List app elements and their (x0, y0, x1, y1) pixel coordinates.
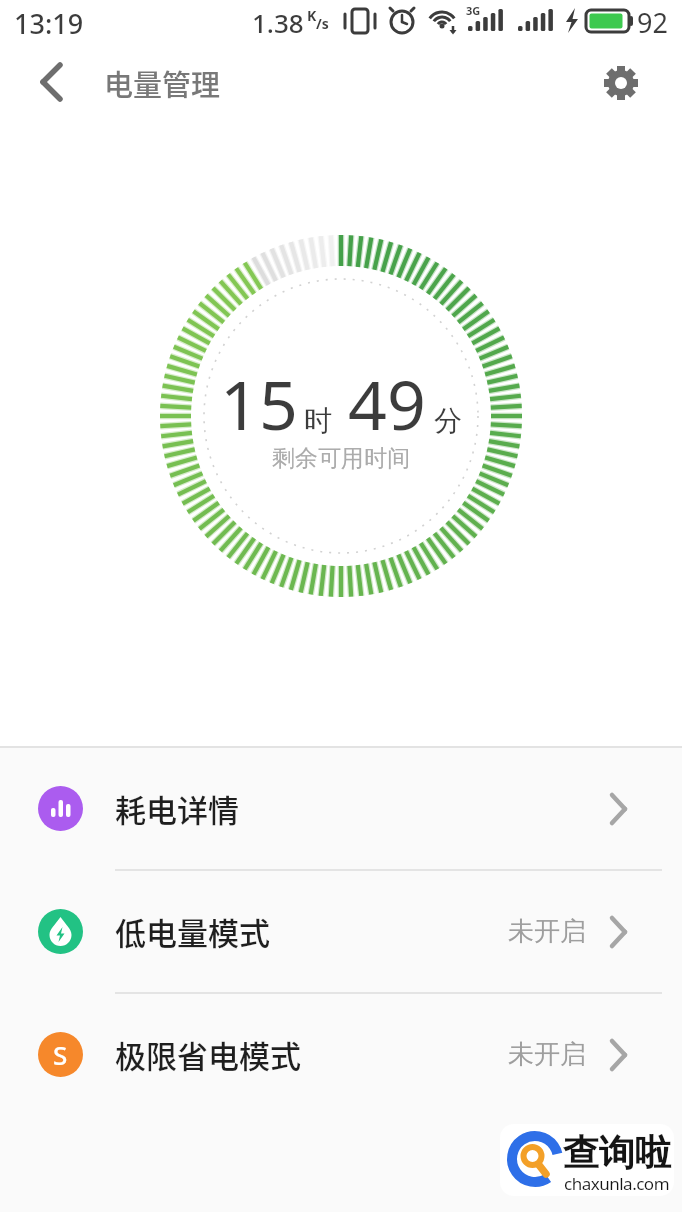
staticText: 电量管理 (104, 62, 221, 104)
staticText: 49 (348, 357, 426, 450)
button[interactable] (593, 55, 649, 111)
staticText: 未开启 (508, 1038, 586, 1071)
staticText: 未开启 (508, 915, 586, 948)
button[interactable]: 查询啦 (500, 1124, 674, 1196)
staticText: 1.38 (252, 5, 304, 40)
staticText: 剩余可用时间 (0, 444, 682, 473)
staticText: 低电量模式 (115, 909, 270, 954)
staticText: 极限省电模式 (115, 1032, 301, 1077)
staticText: S (53, 1037, 68, 1072)
button[interactable]: S (0, 994, 682, 1115)
staticText: 时 (304, 403, 332, 438)
staticText: /s (316, 14, 329, 33)
staticText: K (307, 6, 317, 25)
staticText: 3G (466, 3, 481, 18)
staticText: 耗电详情 (115, 786, 239, 831)
button[interactable] (24, 54, 80, 110)
staticText: 分 (434, 403, 462, 438)
button[interactable]: 耗电详情 (0, 748, 682, 869)
staticText: 查询啦 (563, 1130, 671, 1175)
staticText: 15 (220, 357, 298, 450)
button[interactable]: 低电量模式 (0, 871, 682, 992)
staticText: 13:19 (14, 5, 84, 42)
staticText: 92 (637, 4, 668, 41)
staticText: chaxunla.com (564, 1172, 670, 1195)
